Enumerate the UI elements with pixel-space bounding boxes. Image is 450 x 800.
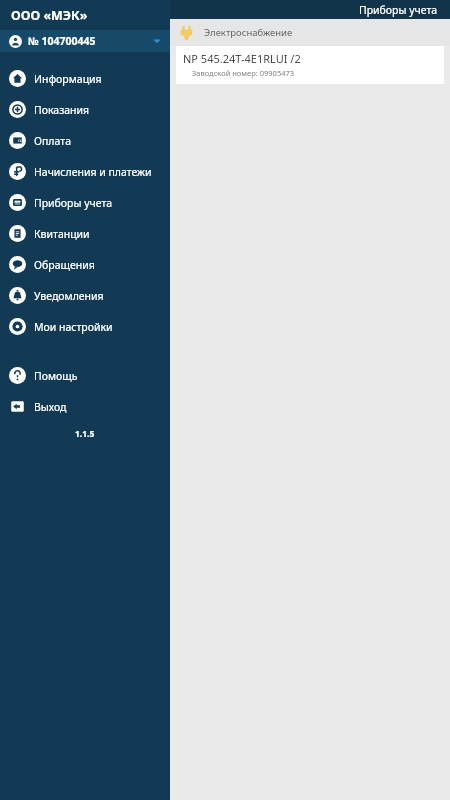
staticText: Начисления и платежи [34, 165, 152, 179]
button[interactable]: Выход [0, 391, 170, 422]
staticText: Информация [34, 72, 102, 86]
staticText: Приборы учета [359, 3, 438, 17]
staticText: NP 545.24T-4E1RLUI /2 [183, 51, 301, 66]
staticText: Мои настройки [34, 320, 113, 334]
button[interactable]: Начисления и платежи [0, 156, 170, 187]
staticText: Квитанции [34, 227, 90, 241]
staticText: Уведомления [34, 289, 104, 303]
button[interactable]: Показания [0, 94, 170, 125]
staticText: Помощь [34, 369, 78, 383]
button[interactable]: Уведомления [0, 280, 170, 311]
staticText: 1.1.5 [75, 428, 95, 440]
button[interactable]: Квитанции [0, 218, 170, 249]
button[interactable]: № 104700445 [0, 30, 170, 52]
button[interactable]: Обращения [0, 249, 170, 280]
button[interactable]: Информация [0, 63, 170, 94]
button[interactable]: Мои настройки [0, 311, 170, 342]
button[interactable]: Оплата [0, 125, 170, 156]
button[interactable]: Помощь [0, 360, 170, 391]
staticText: Приборы учета [34, 196, 113, 210]
staticText: Оплата [34, 134, 71, 148]
staticText: № 104700445 [28, 34, 96, 48]
staticText: Обращения [34, 258, 95, 272]
staticText: ООО «МЭК» [11, 7, 88, 24]
staticText: Показания [34, 103, 90, 117]
staticText: Заводской номер: 09905473 [192, 68, 295, 78]
button[interactable]: Приборы учета [0, 187, 170, 218]
staticText: Электроснабжение [204, 26, 293, 39]
staticText: Выход [34, 400, 67, 414]
button[interactable]: NP 545.24T-4E1RLUI /2 [176, 46, 444, 84]
